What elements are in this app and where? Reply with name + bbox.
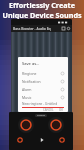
button[interactable]: Notification [22, 77, 64, 85]
staticText: Notification [22, 79, 41, 84]
staticText: Music [22, 95, 32, 100]
staticText: New ringtone - Untitled [22, 102, 58, 106]
staticText: Ringtone [22, 71, 37, 76]
button[interactable]: OK [58, 108, 64, 112]
button[interactable]: CANCEL [42, 108, 55, 112]
button[interactable]: Knob [48, 117, 64, 133]
button[interactable]: Ringtone [22, 69, 64, 77]
button[interactable]: Music [22, 93, 64, 101]
staticText: OK [59, 108, 63, 112]
staticText: Effortlessly Create [0, 0, 84, 10]
staticText: Custom [37, 114, 45, 117]
staticText: Bass Booster - Audio Eq [13, 26, 51, 31]
staticText: Alarm [22, 87, 32, 92]
button[interactable]: Control [58, 136, 66, 144]
button[interactable]: Custom [35, 114, 47, 117]
button[interactable]: Save [61, 26, 66, 31]
button[interactable]: Bass Booster - Audio Eq [11, 25, 72, 32]
staticText: CANCEL [43, 108, 54, 112]
staticText: Save as... [22, 61, 40, 66]
staticText: Unique Device Sounds [0, 10, 84, 20]
button[interactable]: Control [16, 136, 24, 144]
button[interactable]: Settings [66, 26, 71, 31]
button[interactable]: Knob [18, 117, 34, 133]
button[interactable]: Play [38, 136, 46, 144]
button[interactable]: Alarm [22, 85, 64, 93]
